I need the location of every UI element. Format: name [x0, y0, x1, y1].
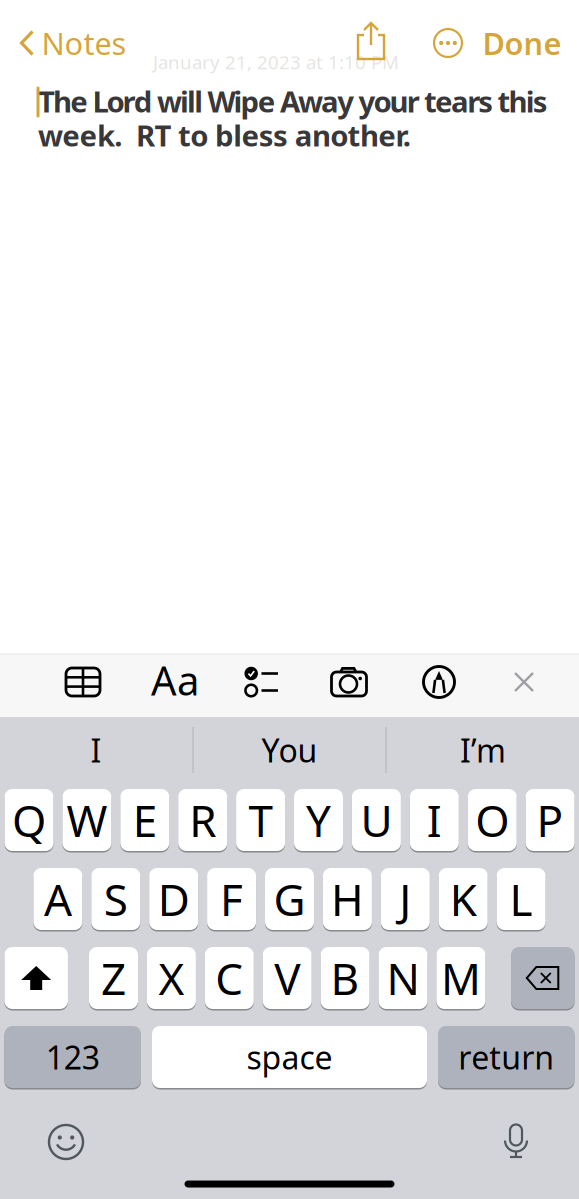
button[interactable]: I’m: [393, 720, 573, 780]
button[interactable]: [511, 946, 574, 1010]
button[interactable]: [4, 946, 68, 1010]
button[interactable]: [49, 1125, 82, 1158]
button[interactable]: [66, 668, 100, 696]
staticText: A: [44, 870, 72, 928]
button[interactable]: 123: [4, 1025, 141, 1089]
staticText: Done: [482, 23, 561, 63]
button[interactable]: Y: [294, 788, 343, 852]
staticText: You: [261, 729, 317, 771]
button[interactable]: F: [207, 867, 256, 931]
button[interactable]: [423, 666, 454, 697]
button[interactable]: S: [91, 867, 140, 931]
staticText: G: [273, 870, 305, 928]
staticText: J: [399, 870, 411, 928]
button[interactable]: [514, 672, 534, 692]
staticText: Notes: [41, 23, 126, 63]
staticText: O: [475, 791, 509, 849]
staticText: F: [220, 870, 243, 928]
staticText: U: [360, 791, 392, 849]
button[interactable]: [331, 667, 367, 697]
button[interactable]: Done: [482, 23, 561, 63]
staticText: week. RT to bless another.: [38, 115, 411, 154]
staticText: January 21, 2023 at 1:10 PM: [153, 50, 399, 74]
button[interactable]: space: [152, 1025, 427, 1089]
button[interactable]: Z: [89, 946, 138, 1010]
button[interactable]: G: [265, 867, 314, 931]
button[interactable]: K: [439, 867, 488, 931]
button[interactable]: I: [410, 788, 459, 852]
staticText: H: [331, 870, 364, 928]
button[interactable]: U: [352, 788, 401, 852]
button[interactable]: return: [438, 1025, 574, 1089]
staticText: W: [66, 791, 107, 849]
button[interactable]: E: [120, 788, 169, 852]
staticText: return: [458, 1036, 554, 1078]
button[interactable]: R: [178, 788, 227, 852]
staticText: S: [104, 870, 128, 928]
staticText: Y: [306, 791, 331, 849]
button[interactable]: Q: [4, 788, 53, 852]
button[interactable]: [433, 28, 463, 58]
staticText: P: [537, 791, 564, 849]
button[interactable]: I: [6, 720, 186, 780]
staticText: Aa: [151, 653, 199, 706]
staticText: V: [274, 949, 300, 1007]
button[interactable]: L: [497, 867, 546, 931]
staticText: E: [133, 791, 157, 849]
button[interactable]: C: [205, 946, 254, 1010]
staticText: I’m: [460, 729, 506, 771]
button[interactable]: A: [33, 867, 82, 931]
button[interactable]: Notes: [19, 23, 126, 63]
staticText: N: [386, 949, 419, 1007]
button[interactable]: O: [468, 788, 517, 852]
staticText: M: [441, 949, 481, 1007]
staticText: D: [158, 870, 190, 928]
staticText: Z: [101, 949, 126, 1007]
button[interactable]: [244, 666, 278, 697]
staticText: R: [189, 791, 216, 849]
button[interactable]: [502, 1123, 530, 1158]
button[interactable]: P: [526, 788, 575, 852]
button[interactable]: [356, 21, 386, 61]
staticText: L: [510, 870, 533, 928]
button[interactable]: V: [263, 946, 312, 1010]
staticText: K: [450, 870, 477, 928]
button[interactable]: J: [381, 867, 430, 931]
staticText: The Lord will Wipe Away your tears this: [38, 81, 548, 120]
staticText: I: [90, 729, 101, 771]
staticText: B: [331, 949, 360, 1007]
button[interactable]: N: [378, 946, 427, 1010]
button[interactable]: B: [321, 946, 370, 1010]
button[interactable]: D: [149, 867, 198, 931]
staticText: X: [158, 949, 184, 1007]
staticText: Q: [12, 791, 46, 849]
staticText: C: [215, 949, 243, 1007]
button[interactable]: X: [147, 946, 196, 1010]
button[interactable]: Aa: [151, 653, 199, 706]
staticText: space: [246, 1036, 332, 1078]
button[interactable]: W: [62, 788, 111, 852]
staticText: I: [427, 791, 442, 849]
button[interactable]: You: [199, 720, 379, 780]
staticText: 123: [46, 1036, 100, 1078]
button[interactable]: M: [436, 946, 485, 1010]
button[interactable]: T: [236, 788, 285, 852]
staticText: T: [249, 791, 273, 849]
button[interactable]: H: [323, 867, 372, 931]
